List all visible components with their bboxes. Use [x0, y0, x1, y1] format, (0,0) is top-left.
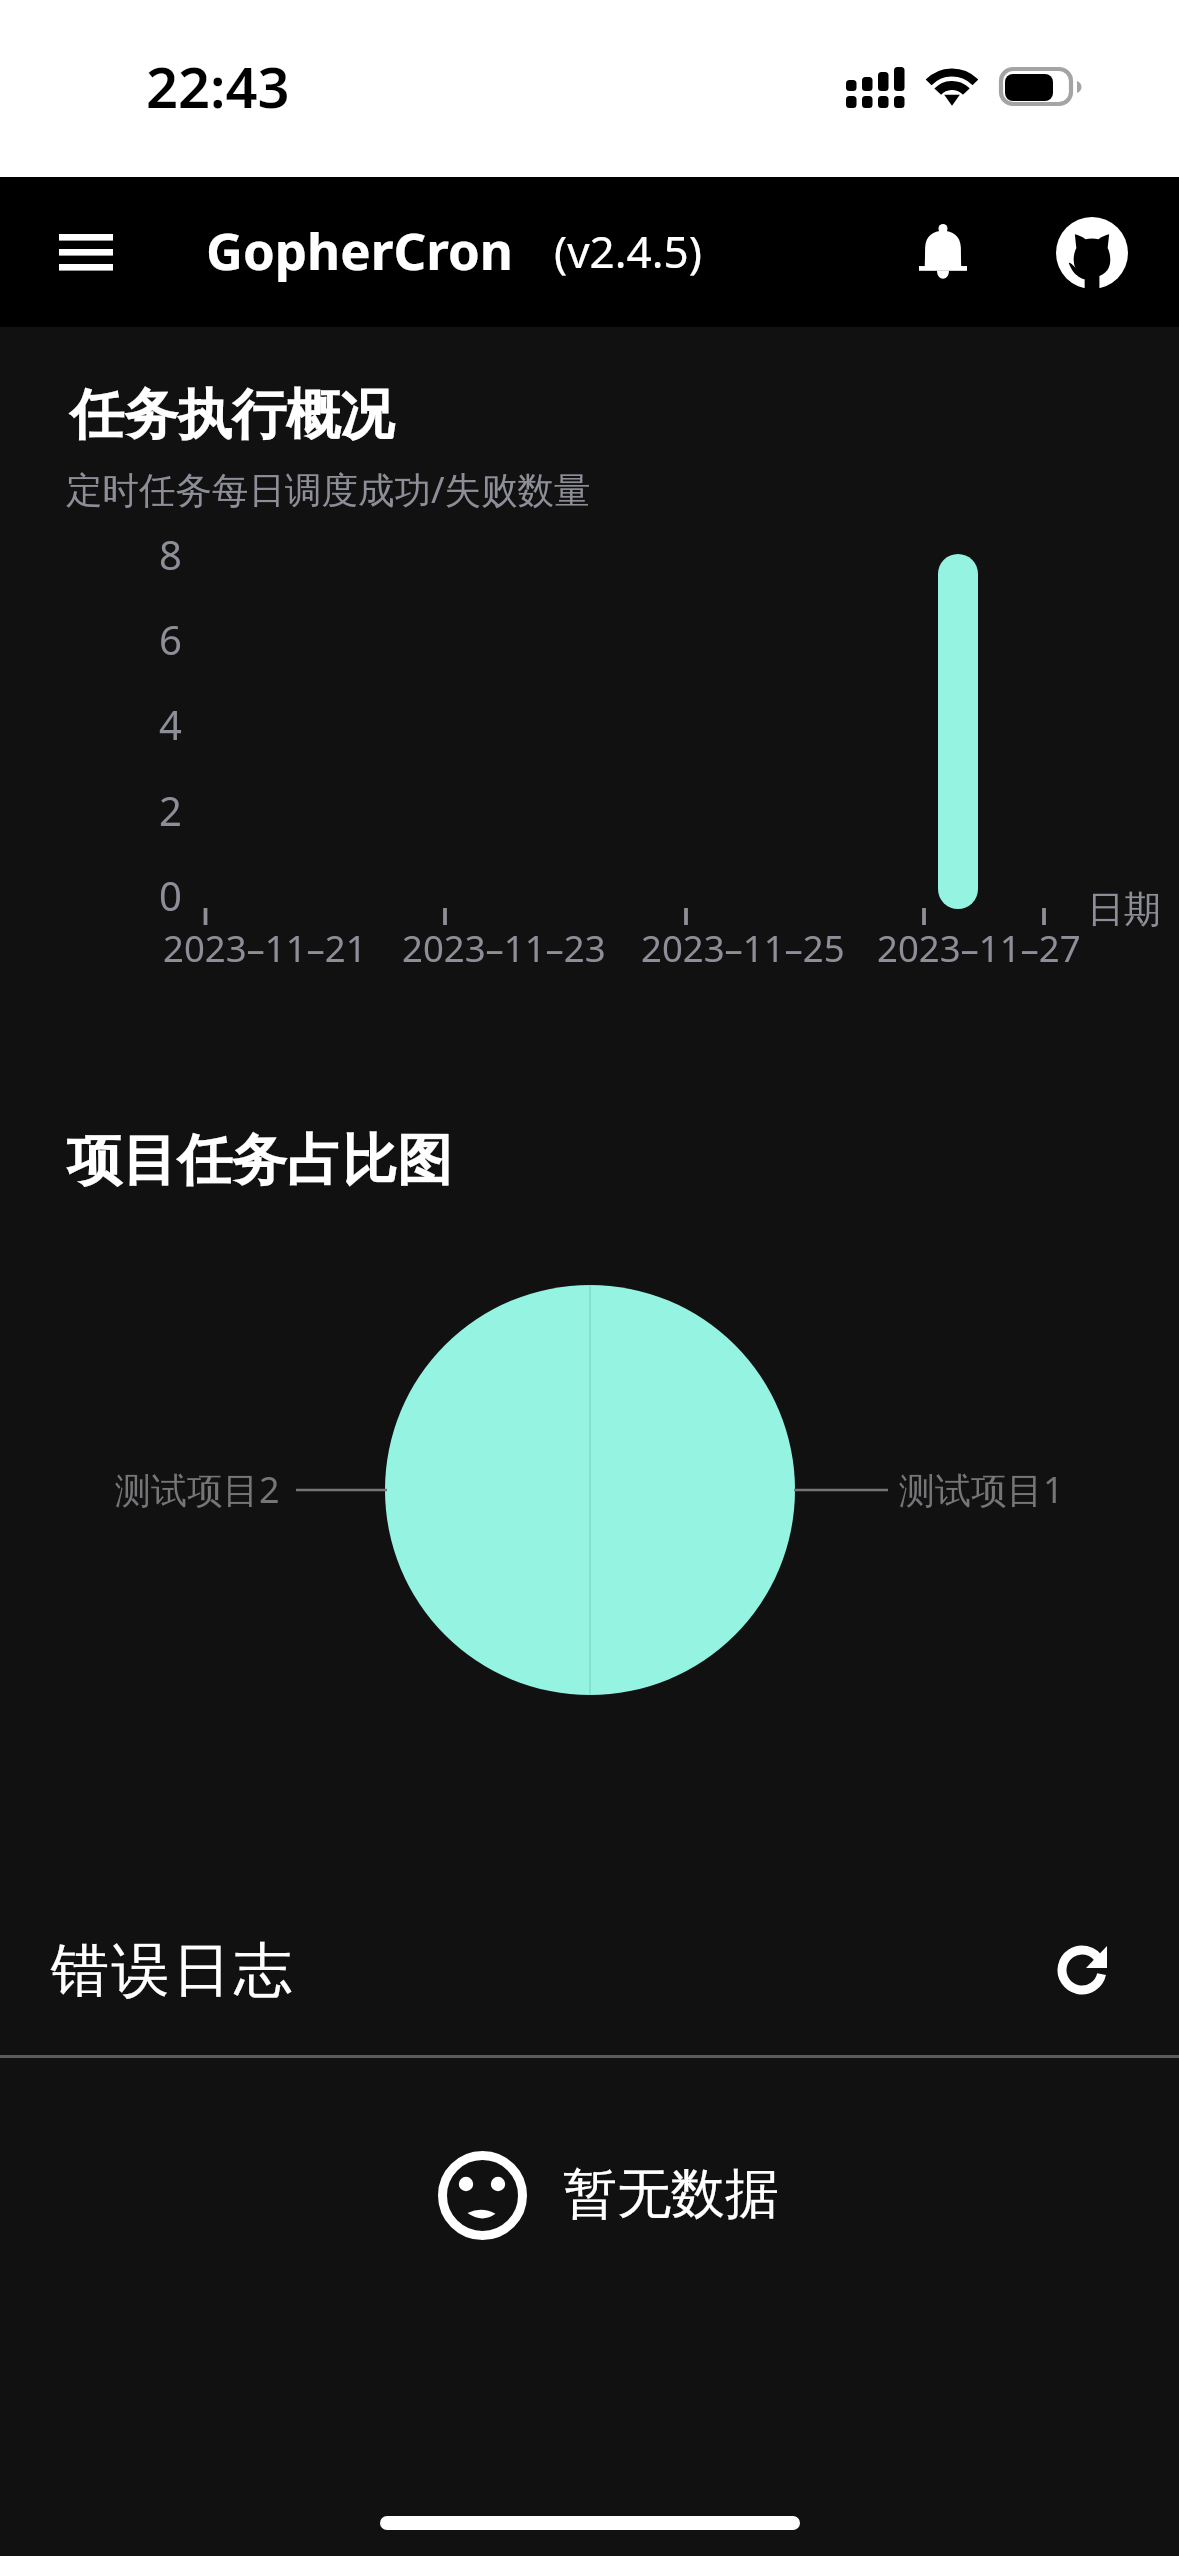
staticText: 任务执行概况 [70, 381, 394, 449]
button[interactable]: GitHub [1032, 193, 1152, 313]
staticText: 2 [159, 783, 182, 837]
staticText: 错误日志 [49, 1934, 293, 2007]
staticText: 6 [159, 612, 182, 666]
staticText: 日期 [1087, 886, 1161, 933]
button[interactable]: Notifications [883, 193, 1003, 313]
staticText: 项目任务占比图 [67, 1126, 452, 1195]
staticText: 2023–11–21 [163, 923, 367, 973]
staticText: 2023–11–25 [641, 923, 845, 973]
staticText: (v2.4.5) [554, 221, 702, 281]
button[interactable]: Menu [14, 186, 158, 318]
staticText: 4 [159, 697, 182, 751]
staticText: 定时任务每日调度成功/失败数量 [66, 464, 591, 514]
staticText: GopherCron [206, 215, 513, 284]
staticText: 2023–11–23 [402, 923, 606, 973]
button[interactable]: Refresh [1024, 1912, 1140, 2028]
staticText: 暂无数据 [563, 2160, 779, 2228]
staticText: 0 [159, 868, 182, 922]
staticText: 22:43 [146, 48, 290, 124]
staticText: 测试项目2 [115, 1465, 280, 1514]
staticText: 2023–11–27 [877, 923, 1081, 973]
staticText: 测试项目1 [899, 1465, 1064, 1514]
staticText: 8 [159, 527, 182, 581]
